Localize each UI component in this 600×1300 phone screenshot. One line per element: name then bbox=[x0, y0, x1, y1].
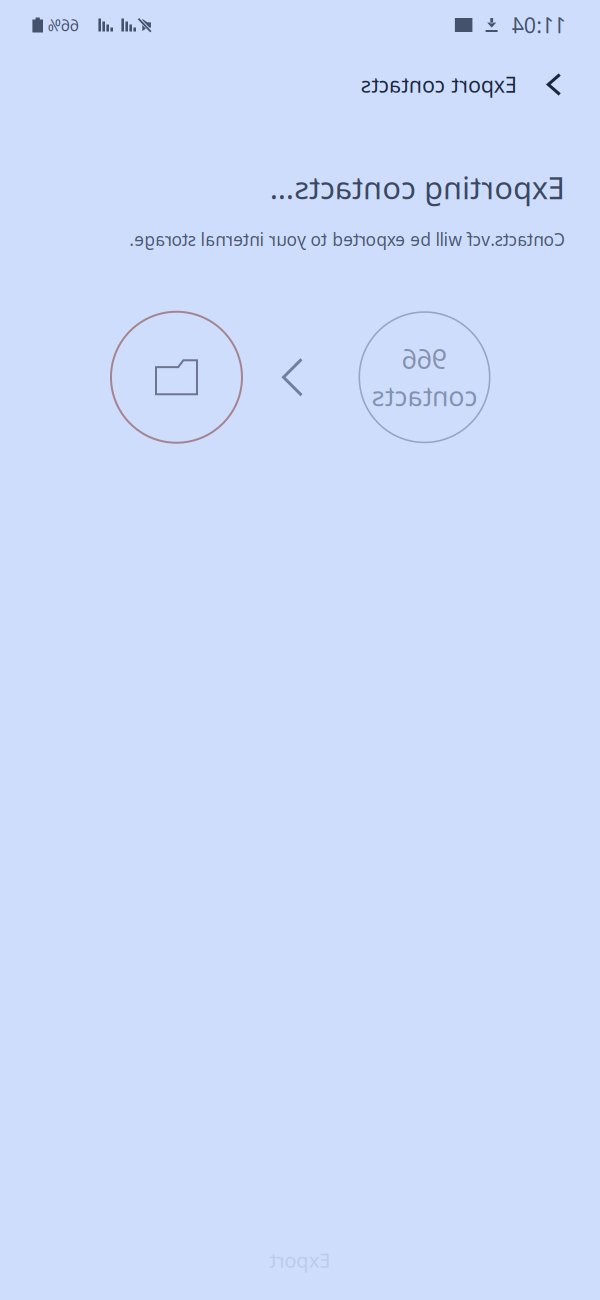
staticText: 966 bbox=[153, 341, 198, 376]
staticText: contacts bbox=[122, 378, 228, 414]
staticText: Export bbox=[269, 1247, 330, 1273]
staticText: 66% bbox=[521, 14, 552, 36]
staticText: Contacts.vcf will be exported to your in… bbox=[35, 228, 471, 251]
staticText: Exporting contacts... bbox=[35, 167, 330, 208]
staticText: 11:04 bbox=[34, 11, 88, 39]
